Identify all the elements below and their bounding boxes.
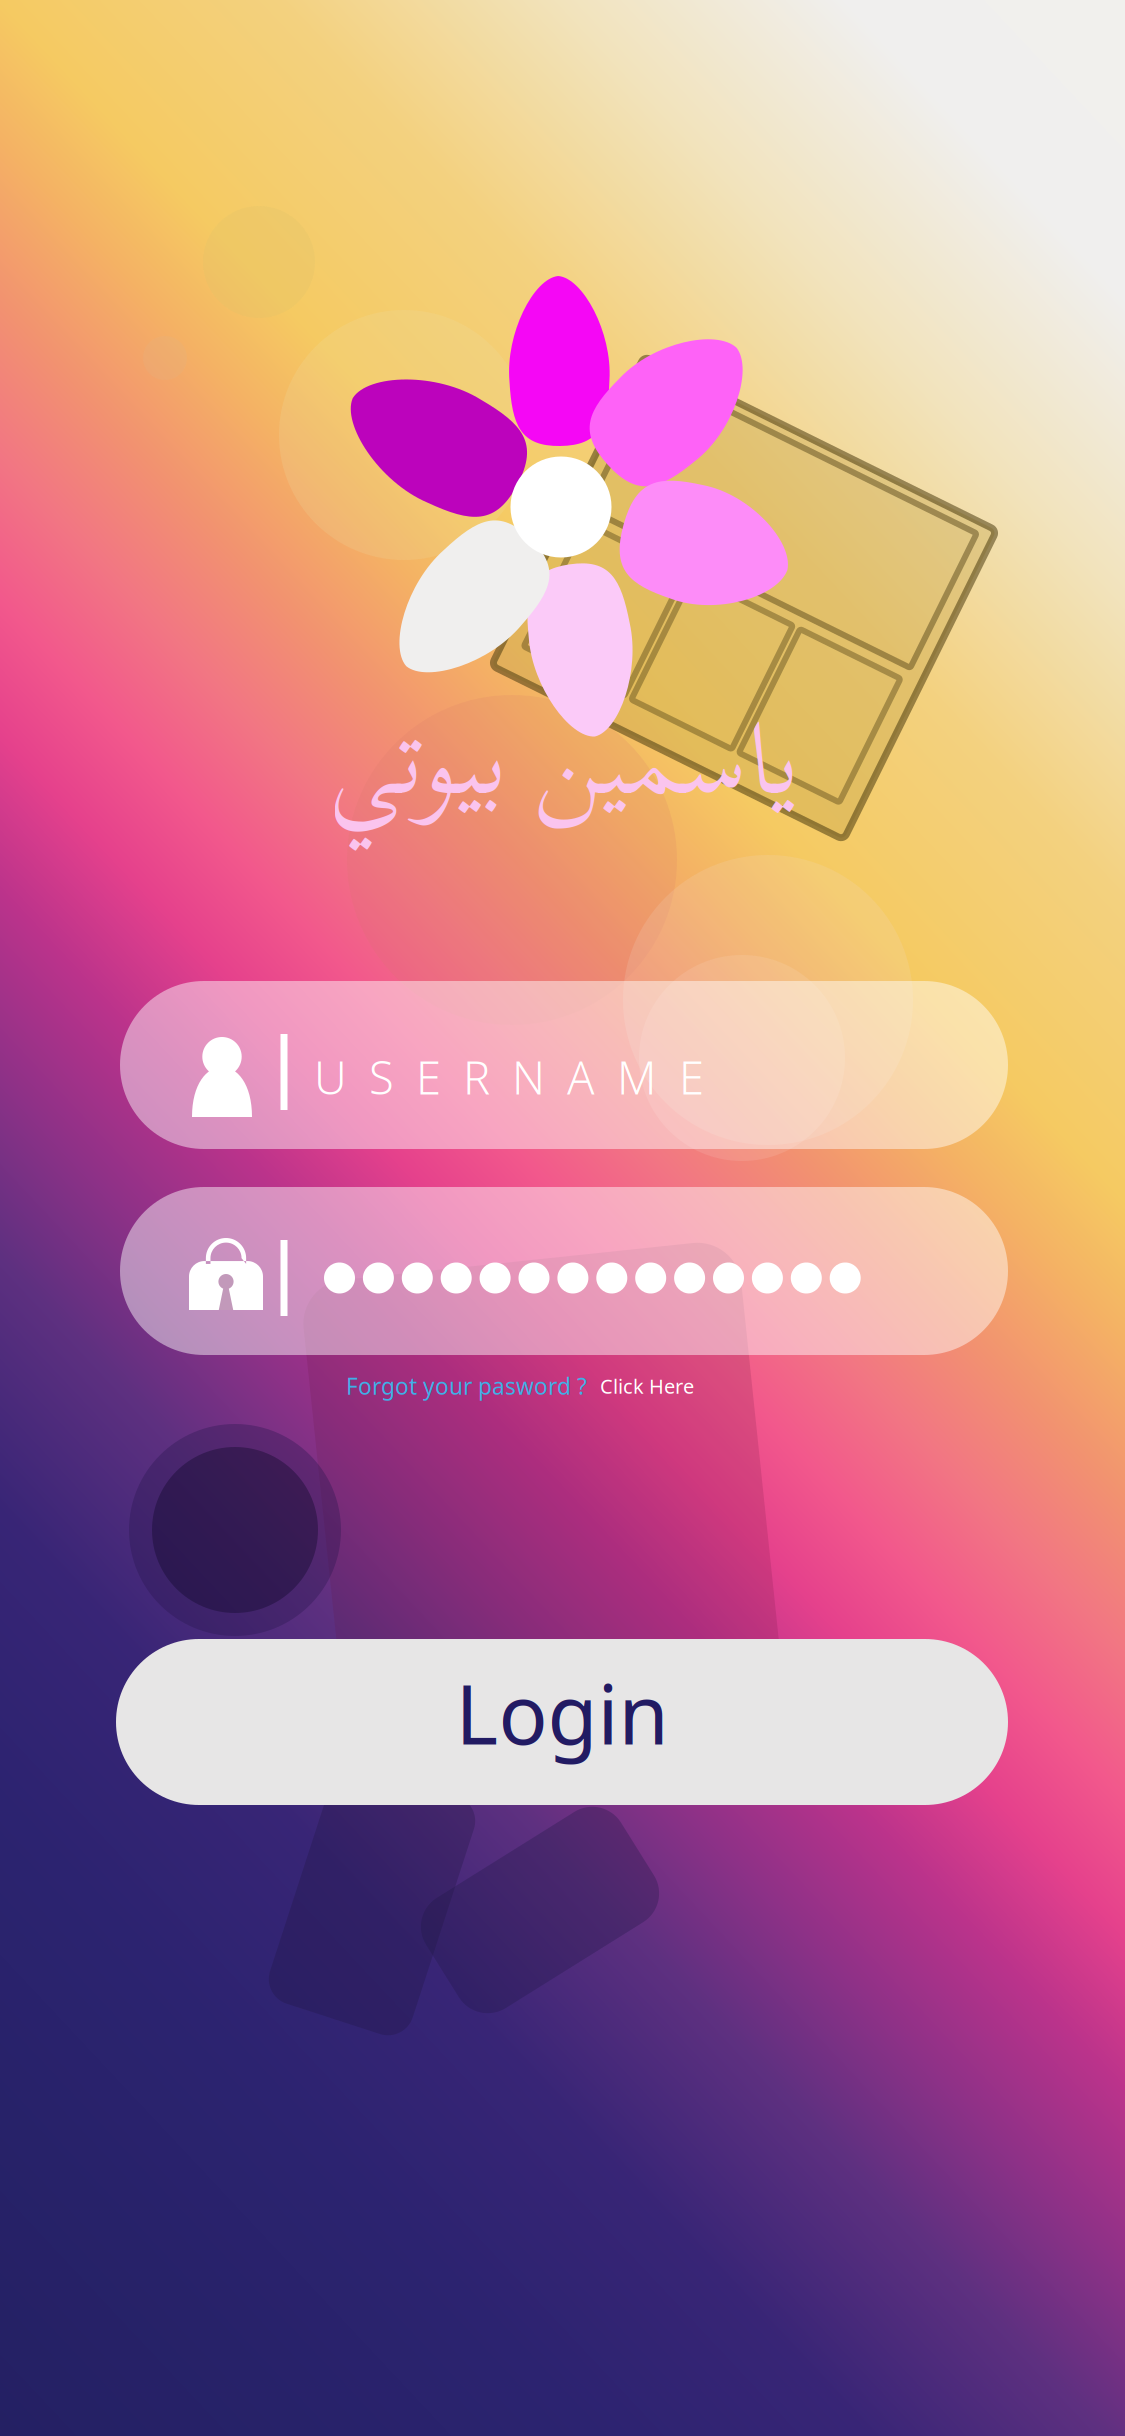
staticText: ياسمين بيوتي — [328, 657, 800, 863]
staticText: Login — [455, 1659, 668, 1767]
button[interactable]: Login — [116, 1639, 1008, 1805]
staticText: Click Here — [600, 1373, 694, 1399]
button[interactable]: USERNAME — [120, 981, 1008, 1149]
staticText: USERNAME — [314, 1047, 704, 1107]
button[interactable] — [120, 1187, 1008, 1355]
staticText: Forgot your pasword ? — [346, 1371, 587, 1401]
button[interactable]: Forgot your pasword ? — [346, 1360, 694, 1412]
